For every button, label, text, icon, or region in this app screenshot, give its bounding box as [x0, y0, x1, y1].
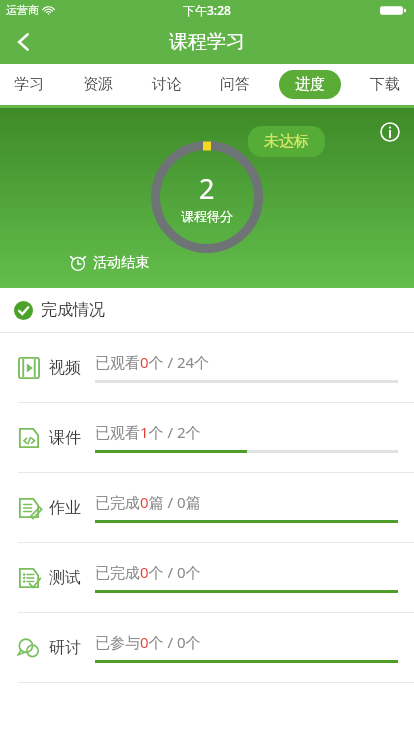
button[interactable]: 未达标 [248, 126, 325, 157]
staticText: 课程学习 [169, 30, 245, 54]
button[interactable]: 作业 [0, 473, 414, 542]
button[interactable]: Back [0, 20, 48, 64]
staticText: 已参与0个 / 0个 [95, 632, 201, 652]
button[interactable]: 测试 [0, 543, 414, 612]
staticText: 已观看0个 / 24个 [95, 352, 210, 372]
button[interactable]: 视频 [0, 333, 414, 402]
staticText: 已观看1个 / 2个 [95, 422, 201, 442]
staticText: 已完成0篇 / 0篇 [95, 492, 201, 512]
staticText: 问答 [220, 75, 250, 94]
staticText: 活动结束 [93, 254, 149, 272]
staticText: 未达标 [264, 132, 309, 151]
staticText: 运营商 [6, 3, 39, 17]
button[interactable]: 讨论 [142, 70, 192, 99]
staticText: 视频 [49, 358, 81, 378]
staticText: 2 [199, 170, 215, 207]
button[interactable]: Info [372, 114, 408, 150]
button[interactable]: 研讨 [0, 613, 414, 682]
staticText: 完成情况 [41, 300, 105, 320]
staticText: 学习 [14, 75, 44, 94]
staticText: 研讨 [49, 638, 81, 658]
staticText: 下午3:28 [183, 2, 231, 18]
staticText: 下载 [370, 75, 400, 94]
staticText: 作业 [49, 498, 81, 518]
button[interactable]: 活动结束 [70, 254, 149, 272]
staticText: 已完成0个 / 0个 [95, 562, 201, 582]
button[interactable]: 课件 [0, 403, 414, 472]
staticText: 课程得分 [181, 208, 233, 224]
staticText: 进度 [295, 75, 325, 94]
staticText: 讨论 [152, 75, 182, 94]
button[interactable]: 下载 [360, 70, 410, 99]
button[interactable]: 进度 [279, 70, 341, 99]
button[interactable]: 资源 [73, 70, 123, 99]
button[interactable]: 问答 [210, 70, 260, 99]
staticText: 资源 [83, 75, 113, 94]
staticText: 课件 [49, 428, 81, 448]
button[interactable]: 学习 [4, 70, 54, 99]
staticText: 测试 [49, 568, 81, 588]
